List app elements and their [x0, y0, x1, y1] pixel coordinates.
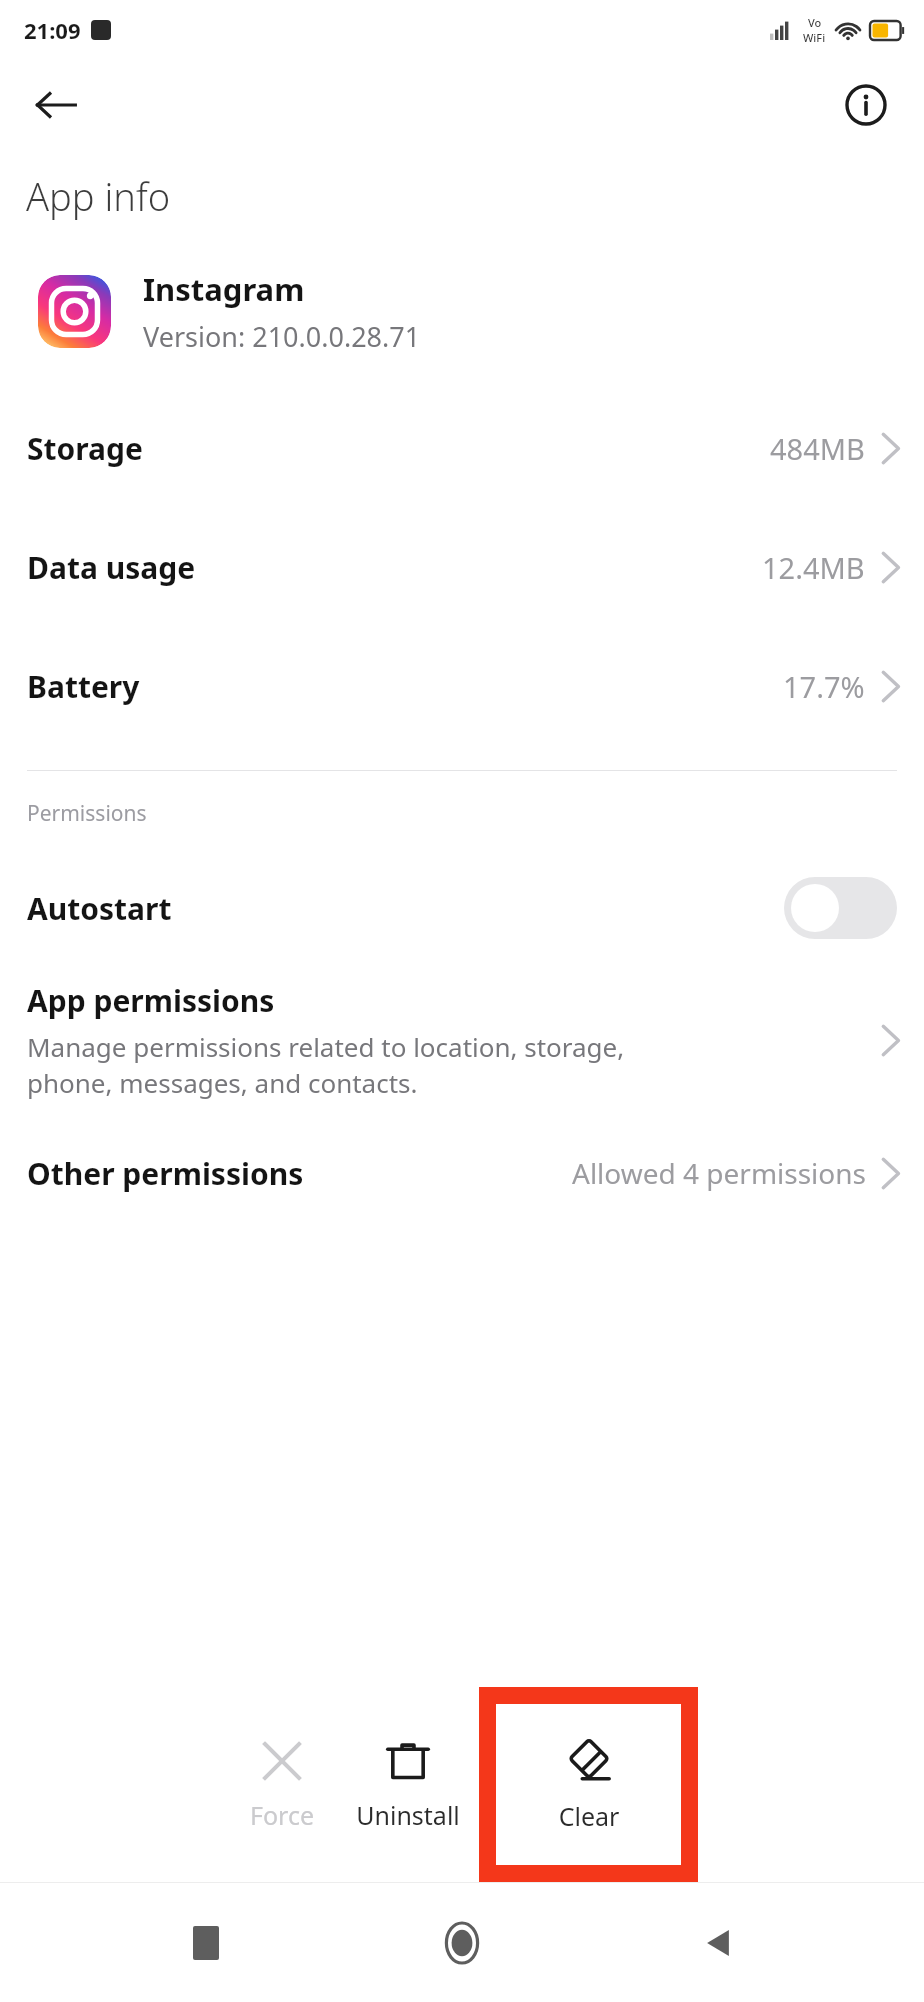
button[interactable]: Uninstall [353, 1732, 463, 1838]
button[interactable]: Recent apps [156, 1893, 256, 1993]
staticText: Uninstall [356, 1798, 460, 1832]
button[interactable]: Data usage [0, 508, 924, 627]
staticText: App permissions [27, 980, 275, 1021]
staticText: Other permissions [27, 1153, 304, 1194]
button[interactable]: Back [668, 1893, 768, 1993]
staticText: Force stop [227, 1798, 337, 1832]
button[interactable]: App permissions [0, 966, 924, 1119]
staticText: Version: 210.0.0.28.71 [143, 318, 421, 355]
staticText: 484MB [770, 429, 865, 468]
button[interactable]: Battery [0, 627, 924, 746]
staticText: 17.7% [783, 667, 865, 706]
button[interactable]: Information [828, 67, 904, 143]
button[interactable]: Force stop [227, 1732, 337, 1838]
button[interactable]: Home [412, 1893, 512, 1993]
staticText: App info [26, 170, 171, 222]
staticText: Storage [27, 428, 143, 469]
staticText: 12.4MB [762, 548, 865, 587]
staticText: Manage permissions related to location, … [27, 1029, 625, 1101]
staticText: Vo [808, 15, 822, 30]
button[interactable]: Other permissions [0, 1119, 924, 1227]
staticText: Autostart [27, 888, 172, 929]
staticText: Data usage [27, 547, 196, 588]
button[interactable]: Autostart [0, 850, 924, 966]
staticText: Instagram [143, 268, 305, 310]
button[interactable]: Clear data [534, 1731, 644, 1839]
button[interactable]: Back [18, 67, 94, 143]
staticText: Battery [27, 666, 140, 707]
staticText: Permissions [27, 799, 147, 828]
staticText: Clear data [534, 1799, 644, 1833]
staticText: 21:09 [24, 15, 81, 45]
staticText: WiFi [803, 30, 826, 45]
button[interactable]: Storage [0, 389, 924, 508]
staticText: Allowed 4 permissions [572, 1154, 867, 1192]
